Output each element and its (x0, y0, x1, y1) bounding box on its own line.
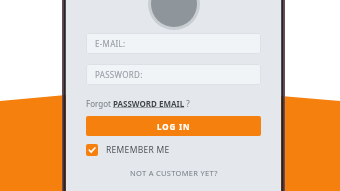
button[interactable]: NOT A CUSTOMER YET? (86, 168, 261, 178)
button[interactable]: PASSWORD: (86, 64, 261, 85)
button[interactable]: Remember me checkbox (86, 144, 170, 156)
button[interactable]: LOG IN (86, 116, 261, 136)
staticText: REMEMBER ME (106, 144, 170, 156)
staticText: E-MAIL: (95, 38, 126, 49)
other: Remember me checkbox (86, 144, 98, 156)
staticText: NOT A CUSTOMER YET? (130, 168, 218, 178)
button[interactable]: E-MAIL: (86, 33, 261, 54)
staticText: LOG IN (157, 121, 191, 132)
staticText: PASSWORD: (95, 69, 143, 80)
staticText: Forgot PASSWORD EMAIL ? (86, 98, 190, 109)
button[interactable]: Forgot PASSWORD EMAIL ? (86, 98, 190, 109)
